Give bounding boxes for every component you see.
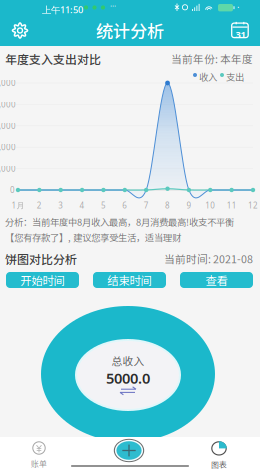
- staticText: 5: [101, 200, 106, 211]
- staticText: 饼图对比分析: [5, 250, 77, 267]
- staticText: 查看: [205, 272, 227, 288]
- staticText: 图表: [211, 458, 227, 470]
- staticText: 31: [236, 28, 246, 40]
- staticText: 统计分析: [96, 18, 164, 43]
- staticText: 开始时间: [20, 272, 64, 288]
- staticText: 当前时间: 2021-08: [164, 251, 253, 266]
- staticText: 收入: [199, 70, 217, 83]
- staticText: 结束时间: [107, 272, 151, 288]
- staticText: ·: [237, 1, 240, 13]
- staticText: 2: [37, 200, 42, 211]
- button[interactable]: 开始时间: [6, 272, 79, 288]
- staticText: 上午11:50: [42, 3, 83, 16]
- staticText: 3: [58, 200, 63, 211]
- staticText: 3,000: [0, 120, 16, 131]
- staticText: 账单: [31, 457, 47, 469]
- staticText: 4: [80, 200, 85, 211]
- staticText: 8: [165, 200, 170, 211]
- staticText: 总收入: [111, 353, 144, 368]
- button[interactable]: 设置: [0, 15, 40, 46]
- staticText: 【您有存款了】, 建议您享受生活，适当理财: [5, 230, 181, 244]
- button[interactable]: 结束时间: [93, 272, 166, 288]
- staticText: 11: [227, 200, 237, 211]
- staticText: 10: [205, 200, 215, 211]
- button[interactable]: 查看: [180, 272, 253, 288]
- staticText: 5,000: [0, 78, 16, 88]
- staticText: 6: [122, 200, 127, 211]
- button[interactable]: 账单: [0, 437, 79, 471]
- staticText: 当前年份: 本年度: [171, 51, 253, 66]
- staticText: ···: [110, 1, 116, 12]
- staticText: 1月: [11, 200, 24, 211]
- staticText: 5000.0: [106, 368, 150, 388]
- staticText: 4,000: [0, 99, 16, 110]
- button[interactable]: 添加记录: [90, 437, 170, 471]
- staticText: 年度支入支出对比: [5, 50, 101, 67]
- staticText: 9: [186, 200, 191, 211]
- staticText: 支出: [226, 70, 244, 83]
- button[interactable]: 选择日期: [220, 15, 260, 46]
- button[interactable]: 添加: [0, 0, 260, 473]
- staticText: 分析：当前年度中8月收入最高，8月消费最高!收支不平衡: [5, 215, 234, 228]
- staticText: 0: [10, 185, 15, 195]
- staticText: 2,000: [0, 142, 16, 152]
- button[interactable]: 图表: [179, 437, 259, 471]
- staticText: 7: [144, 200, 149, 211]
- staticText: 12: [248, 200, 258, 211]
- staticText: 1,000: [0, 163, 16, 174]
